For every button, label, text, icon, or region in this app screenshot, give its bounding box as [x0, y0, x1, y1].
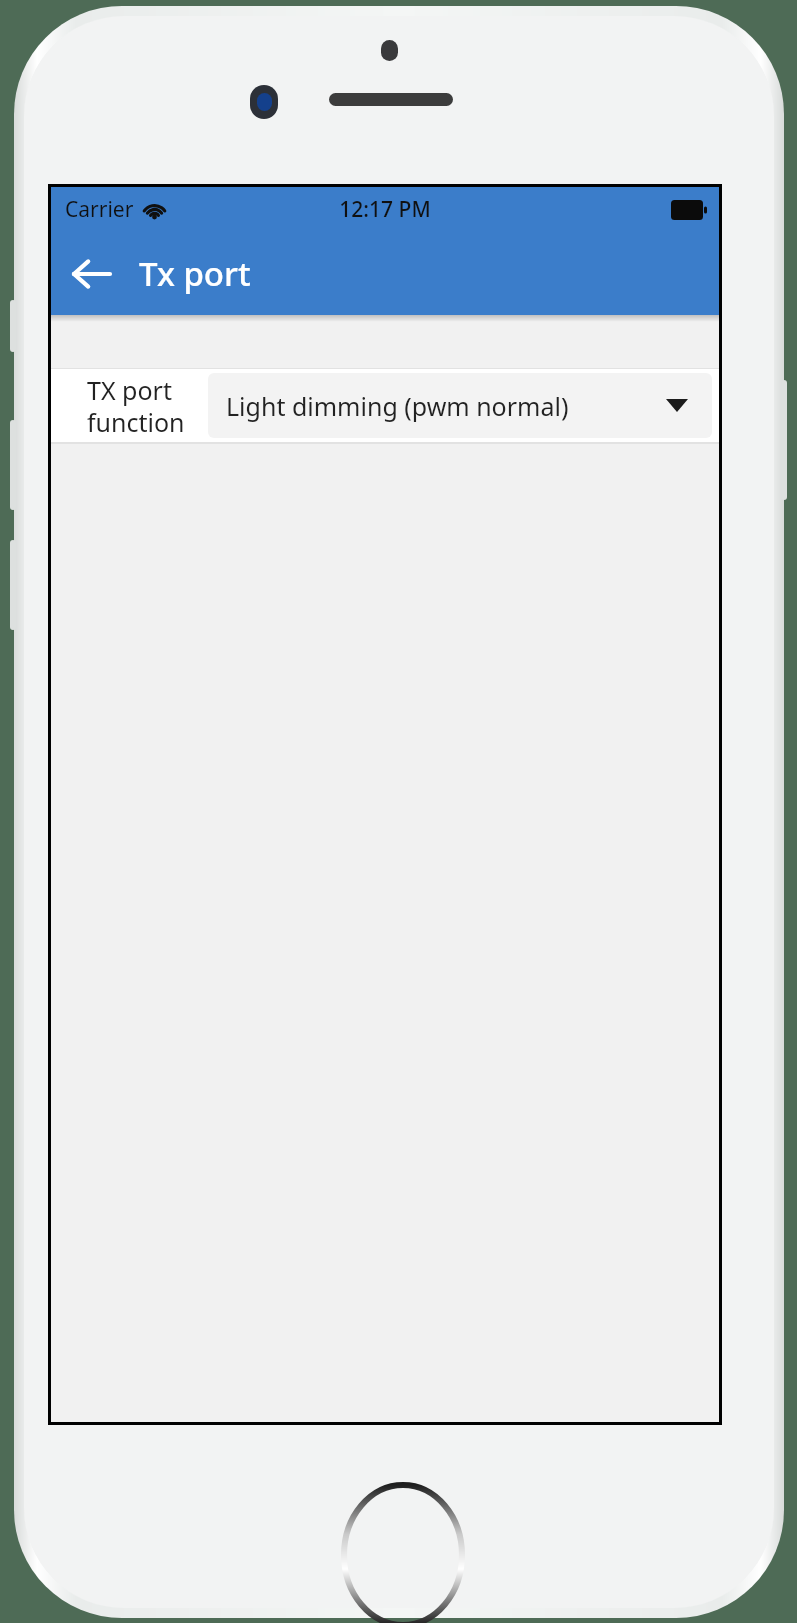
button[interactable]: TX port function	[51, 369, 719, 442]
staticText: 12:17 PM	[339, 195, 431, 224]
staticText: Tx port	[139, 251, 251, 296]
staticText: TX port function	[87, 373, 185, 439]
staticText: Carrier	[65, 195, 134, 224]
staticText: Light dimming (pwm normal)	[226, 389, 569, 423]
button[interactable]: Light dimming (pwm normal)	[208, 373, 712, 438]
button[interactable]: Back	[61, 243, 123, 305]
